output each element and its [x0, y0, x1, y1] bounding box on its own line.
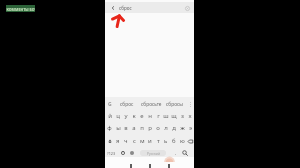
staticText: ь — [164, 137, 168, 145]
staticText: п — [140, 124, 144, 132]
button[interactable]: Back — [105, 2, 194, 13]
button[interactable]: . — [171, 147, 180, 159]
staticText: сбросьте — [141, 101, 162, 108]
button[interactable]: б — [170, 135, 178, 147]
button[interactable]: Voice input — [127, 147, 136, 159]
staticText: ю — [180, 137, 185, 145]
staticText: е — [140, 112, 144, 120]
button[interactable]: сбросьте — [139, 98, 163, 110]
staticText: х — [188, 112, 192, 120]
staticText: а — [132, 124, 136, 132]
staticText: г — [157, 112, 160, 120]
staticText: . — [175, 150, 177, 157]
button[interactable]: м — [138, 135, 146, 147]
button[interactable]: й — [105, 110, 114, 122]
button[interactable]: Back — [126, 158, 136, 168]
button[interactable]: Clear search — [183, 4, 191, 12]
staticText: ы — [116, 124, 121, 132]
button[interactable]: ф — [105, 122, 114, 134]
button[interactable]: Shift — [105, 135, 114, 147]
staticText: щ — [171, 112, 177, 120]
button[interactable]: ю — [178, 135, 186, 147]
staticText: э — [189, 124, 192, 132]
staticText: ч — [124, 137, 128, 145]
button[interactable]: г — [154, 110, 162, 122]
button[interactable]: у — [122, 110, 130, 122]
staticText: н — [148, 112, 152, 120]
button[interactable]: о — [154, 122, 162, 134]
button[interactable]: с — [130, 135, 138, 147]
button[interactable]: я — [114, 135, 122, 147]
staticText: КОММЕНТЫ БОТ — [6, 7, 35, 12]
button[interactable]: Recents — [164, 158, 174, 168]
button[interactable]: е — [138, 110, 146, 122]
button[interactable]: к — [130, 110, 138, 122]
button[interactable]: сбросы — [163, 98, 187, 110]
button[interactable]: сброс — [115, 98, 139, 110]
button[interactable]: р — [146, 122, 154, 134]
staticText: ж — [180, 124, 185, 132]
button[interactable]: н — [146, 110, 154, 122]
staticText: й — [108, 112, 112, 120]
button[interactable]: More options — [187, 98, 194, 110]
staticText: сброс — [119, 5, 132, 11]
staticText: т — [157, 137, 160, 145]
staticText: сбросы — [166, 101, 184, 108]
button[interactable]: и — [146, 135, 154, 147]
button[interactable]: Home — [145, 158, 155, 168]
button[interactable]: щ — [170, 110, 178, 122]
button[interactable]: л — [162, 122, 170, 134]
staticText: я — [116, 137, 120, 145]
button[interactable]: ц — [114, 110, 122, 122]
button[interactable]: а — [130, 122, 138, 134]
button[interactable]: Backspace — [186, 135, 194, 147]
button[interactable]: п — [138, 122, 146, 134]
staticText: у — [124, 112, 128, 120]
staticText: к — [132, 112, 136, 120]
staticText: о — [156, 124, 160, 132]
button[interactable]: э — [186, 122, 194, 134]
button[interactable]: ш — [162, 110, 170, 122]
staticText: ?123 — [107, 151, 116, 156]
staticText: м — [140, 137, 145, 145]
button[interactable]: д — [170, 122, 178, 134]
button[interactable]: ч — [122, 135, 130, 147]
staticText: и — [148, 137, 152, 145]
staticText: б — [172, 137, 176, 145]
button[interactable]: т — [154, 135, 162, 147]
button[interactable]: ы — [114, 122, 122, 134]
staticText: л — [164, 124, 168, 132]
button[interactable]: Search — [180, 147, 190, 159]
button[interactable]: ж — [178, 122, 186, 134]
staticText: G — [108, 101, 112, 108]
staticText: в — [124, 124, 128, 132]
button[interactable]: Русский — [140, 150, 166, 156]
staticText: Русский — [147, 151, 160, 156]
staticText: з — [181, 112, 184, 120]
staticText: ф — [107, 124, 112, 132]
button[interactable]: Google search — [105, 98, 115, 110]
button[interactable]: Emoji — [118, 147, 128, 159]
staticText: ⋮ — [188, 101, 193, 107]
staticText: с — [133, 137, 136, 145]
button[interactable]: ь — [162, 135, 170, 147]
staticText: р — [148, 124, 152, 132]
staticText: сброс — [120, 101, 134, 108]
staticText: ц — [116, 112, 120, 120]
button[interactable]: з — [178, 110, 186, 122]
button[interactable]: х — [186, 110, 194, 122]
button[interactable]: ?123 — [106, 147, 117, 159]
button[interactable]: Back — [109, 4, 117, 12]
staticText: ш — [163, 112, 169, 120]
button[interactable]: в — [122, 122, 130, 134]
staticText: д — [172, 124, 176, 132]
